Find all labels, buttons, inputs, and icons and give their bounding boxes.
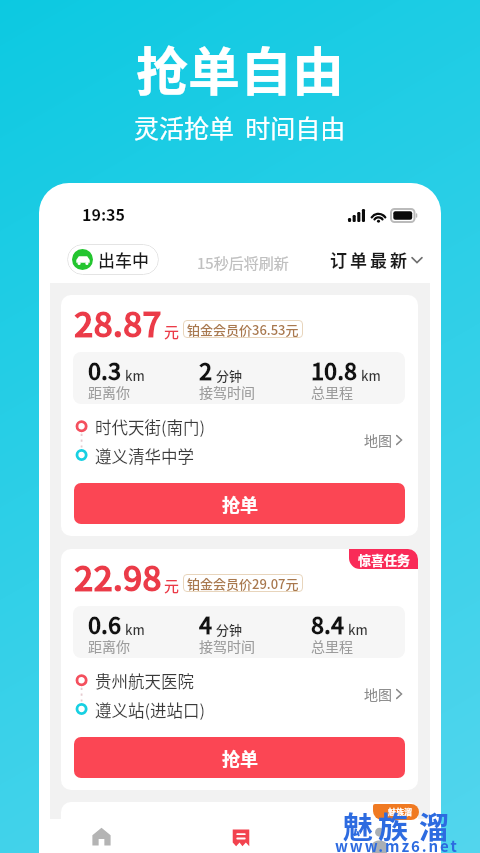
staticText: 28.87 [74, 298, 162, 347]
staticText: 总里程 [311, 636, 353, 655]
staticText: 灵活抢单 时间自由 [134, 109, 346, 145]
staticText: km [348, 620, 368, 639]
button[interactable]: 地图 [364, 430, 402, 450]
button[interactable]: 出车中 [67, 244, 159, 275]
staticText: km [361, 366, 381, 385]
staticText: 距离你 [88, 382, 130, 401]
staticText: 铂金会员价36.53元 [187, 320, 299, 338]
staticText: www.mz6.net [335, 835, 459, 853]
staticText: 时代天街(南门) [95, 415, 206, 439]
button[interactable]: 订单最新 [330, 244, 422, 275]
staticText: 铂金会员价29.07元 [187, 574, 299, 592]
staticText: 抢单自由 [136, 31, 345, 106]
button[interactable]: 抢单 [74, 483, 405, 524]
button[interactable]: Home [61, 814, 141, 853]
staticText: 2 [199, 353, 213, 386]
staticText: 分钟 [216, 620, 243, 639]
button[interactable]: 惊喜任务 [61, 549, 418, 790]
staticText: 15秒后将刷新 [197, 252, 289, 274]
staticText: 贵州航天医院 [95, 669, 194, 693]
staticText: 元 [164, 575, 180, 597]
staticText: 分钟 [216, 366, 243, 385]
staticText: 总里程 [311, 382, 353, 401]
staticText: 接驾时间 [199, 636, 255, 655]
staticText: 魅族溜 [388, 806, 412, 818]
button[interactable]: Orders [201, 815, 281, 853]
staticText: 溜 [419, 803, 449, 846]
staticText: 订单最新 [330, 247, 410, 272]
staticText: 0.3 [88, 353, 122, 386]
staticText: 抢单 [222, 491, 258, 517]
staticText: 地图 [364, 430, 392, 450]
staticText: 0.6 [88, 607, 122, 640]
staticText: 元 [164, 321, 180, 343]
staticText: 抢单 [222, 745, 258, 771]
staticText: 8.4 [311, 607, 345, 640]
staticText: km [125, 366, 145, 385]
staticText: km [125, 620, 145, 639]
staticText: 族 [378, 803, 408, 846]
staticText: 惊喜任务 [358, 550, 411, 569]
staticText: 遵义清华中学 [95, 444, 194, 468]
staticText: 地图 [364, 684, 392, 704]
staticText: 接驾时间 [199, 382, 255, 401]
staticText: 出车中 [98, 247, 149, 272]
staticText: 22.98 [74, 552, 162, 601]
staticText: 4 [199, 607, 213, 640]
staticText: 距离你 [88, 636, 130, 655]
staticText: 19:35 [82, 202, 125, 225]
staticText: 10.8 [311, 353, 358, 386]
button[interactable]: 抢单 [74, 737, 405, 778]
button[interactable]: 28.87 [61, 295, 418, 536]
button[interactable]: 地图 [364, 684, 402, 704]
staticText: 魅 [343, 803, 373, 846]
staticText: 遵义站(进站口) [95, 698, 206, 722]
